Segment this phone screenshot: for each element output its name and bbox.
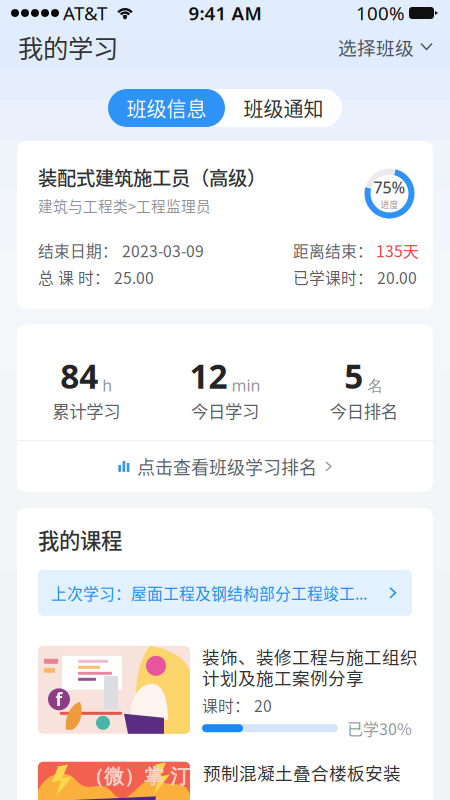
staticText: 今日排名 [330, 398, 398, 423]
staticText: 装饰、装修工程与施工组织 [202, 644, 418, 669]
staticText: 班级信息 [126, 93, 206, 122]
button[interactable]: （微）掌 汀 [38, 762, 432, 800]
staticText: AT&T [63, 1, 107, 25]
staticText: 屋面工程及钢结构部分工程竣工... [131, 581, 367, 604]
staticText: 总 课 时： 25.00 [38, 266, 154, 289]
staticText: 135天 [376, 239, 419, 262]
button[interactable]: f [38, 646, 430, 740]
staticText: 结束日期： 2023-03-09 [38, 239, 204, 262]
staticText: 选择班级 [338, 33, 414, 60]
staticText: 我的学习 [18, 29, 118, 65]
staticText: min [231, 375, 260, 396]
staticText: 我的课程 [38, 524, 122, 555]
staticText: 上次学习： [51, 581, 131, 604]
staticText: 建筑与工程类>工程监理员 [38, 195, 211, 216]
staticText: 预制混凝土叠合楼板安装 [203, 759, 401, 785]
staticText: 累计学习 [52, 398, 120, 423]
staticText: f [55, 688, 62, 711]
button[interactable]: 班级信息 [108, 89, 225, 127]
button[interactable]: 班级通知 [225, 89, 342, 127]
staticText: 已学30% [347, 717, 412, 740]
staticText: 名 [367, 376, 383, 396]
staticText: 进度 [380, 198, 398, 210]
staticText: 点击查看班级学习排名 [137, 453, 317, 479]
staticText: 班级通知 [243, 93, 323, 122]
button[interactable]: 上次学习： [38, 570, 412, 616]
staticText: 9:41 AM [188, 1, 261, 25]
staticText: 今日学习 [191, 398, 259, 423]
staticText: 计划及施工案例分享 [202, 665, 364, 690]
staticText: 已学课时： 20.00 [293, 266, 417, 289]
staticText: 100% [356, 1, 405, 25]
staticText: 装配式建筑施工员（高级） [38, 163, 266, 191]
staticText: 课时： 20 [202, 694, 272, 717]
button[interactable]: 选择班级 [338, 33, 432, 60]
button[interactable]: 点击查看班级学习排名 [17, 441, 433, 492]
staticText: 5 [344, 354, 363, 398]
staticText: （微）掌 汀 [84, 764, 190, 789]
staticText: h [102, 375, 112, 396]
staticText: 84 [60, 354, 98, 398]
staticText: 75% [373, 177, 405, 198]
staticText: 12 [189, 354, 227, 398]
staticText: 距离结束： [293, 239, 373, 262]
